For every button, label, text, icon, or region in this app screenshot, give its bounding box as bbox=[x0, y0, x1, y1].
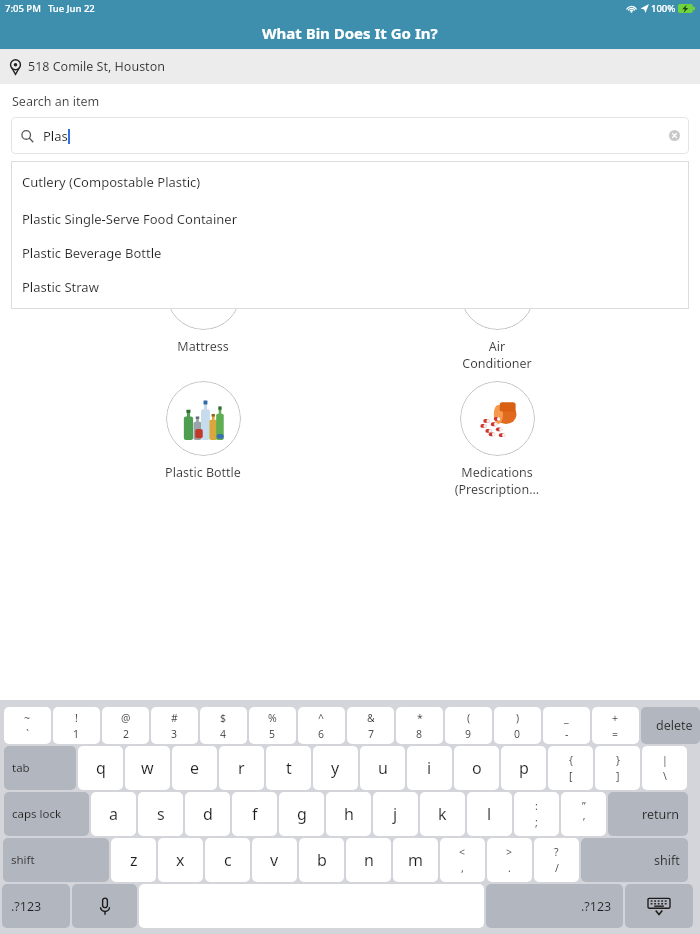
staticText: & bbox=[367, 711, 375, 725]
button[interactable]: _ bbox=[543, 707, 590, 744]
staticText: 8 bbox=[416, 727, 423, 741]
button[interactable]: | bbox=[642, 746, 687, 790]
button[interactable]: caps lock bbox=[4, 792, 89, 836]
staticText: 7 bbox=[368, 727, 375, 741]
button[interactable]: w bbox=[125, 746, 170, 790]
button[interactable]: return bbox=[608, 792, 688, 836]
button[interactable]: ? bbox=[534, 838, 579, 882]
staticText: ] bbox=[616, 769, 620, 783]
button[interactable]: Plastic Single-Serve Food Container bbox=[11, 202, 689, 236]
staticText: k bbox=[438, 803, 447, 825]
button[interactable]: t bbox=[266, 746, 311, 790]
button[interactable]: o bbox=[454, 746, 499, 790]
button[interactable]: a bbox=[91, 792, 136, 836]
button[interactable]: tab bbox=[4, 746, 76, 790]
button[interactable]: f bbox=[232, 792, 277, 836]
button[interactable]: Hide keyboard bbox=[625, 884, 693, 928]
button[interactable]: .?123 bbox=[486, 884, 623, 928]
staticText: [ bbox=[569, 769, 573, 783]
staticText: m bbox=[408, 849, 423, 871]
staticText: | bbox=[662, 753, 668, 767]
staticText: ^ bbox=[318, 711, 325, 725]
staticText: j bbox=[393, 803, 398, 825]
button[interactable]: Medications (Prescription... bbox=[407, 381, 587, 497]
staticText: * bbox=[417, 711, 423, 725]
button[interactable]: Cutlery (Compostable Plastic) bbox=[11, 161, 689, 202]
button[interactable]: l bbox=[467, 792, 512, 836]
staticText: caps lock bbox=[12, 806, 62, 822]
button[interactable]: Plastic Bottle bbox=[113, 381, 293, 481]
button[interactable]: x bbox=[158, 838, 203, 882]
staticText: . bbox=[508, 861, 511, 875]
button[interactable]: shift bbox=[3, 838, 109, 882]
staticText: ) bbox=[516, 711, 520, 725]
button[interactable]: .?123 bbox=[2, 884, 70, 928]
button[interactable]: n bbox=[346, 838, 391, 882]
button[interactable]: k bbox=[420, 792, 465, 836]
staticText: 100% bbox=[651, 2, 676, 15]
button[interactable]: $ bbox=[200, 707, 247, 744]
button[interactable]: * bbox=[396, 707, 443, 744]
staticText: g bbox=[297, 803, 307, 825]
button[interactable]: d bbox=[185, 792, 230, 836]
button[interactable]: + bbox=[592, 707, 639, 744]
button[interactable]: } bbox=[595, 746, 640, 790]
button[interactable]: s bbox=[138, 792, 183, 836]
button[interactable]: v bbox=[252, 838, 297, 882]
button[interactable]: < bbox=[440, 838, 485, 882]
button[interactable]: ! bbox=[53, 707, 100, 744]
staticText: > bbox=[506, 845, 513, 859]
button[interactable]: i bbox=[407, 746, 452, 790]
button[interactable]: Plastic Beverage Bottle bbox=[11, 236, 689, 270]
button[interactable]: Air Conditioner bbox=[407, 255, 587, 371]
staticText: 1 bbox=[73, 727, 80, 741]
button[interactable]: @ bbox=[102, 707, 149, 744]
staticText: Cutlery (Compostable Plastic) bbox=[22, 173, 201, 191]
button[interactable]: Mattress bbox=[113, 255, 293, 355]
button[interactable]: % bbox=[249, 707, 296, 744]
button[interactable]: m bbox=[393, 838, 438, 882]
button[interactable]: ~ bbox=[4, 707, 51, 744]
staticText: delete bbox=[656, 717, 693, 734]
button[interactable]: 518 Comile St, Houston bbox=[9, 58, 165, 75]
staticText: 9 bbox=[465, 727, 472, 741]
button[interactable]: y bbox=[313, 746, 358, 790]
staticText: .?123 bbox=[581, 898, 612, 915]
staticText: h bbox=[344, 803, 354, 825]
button[interactable]: e bbox=[172, 746, 217, 790]
button[interactable]: > bbox=[487, 838, 532, 882]
button[interactable]: ( bbox=[445, 707, 492, 744]
staticText: ? bbox=[554, 845, 559, 859]
button[interactable]: b bbox=[299, 838, 344, 882]
button[interactable]: z bbox=[111, 838, 156, 882]
button[interactable]: : bbox=[514, 792, 559, 836]
staticText: x bbox=[176, 849, 185, 871]
button[interactable]: u bbox=[360, 746, 405, 790]
button[interactable]: h bbox=[326, 792, 371, 836]
button[interactable]: Voice input bbox=[72, 884, 137, 928]
button[interactable]: { bbox=[548, 746, 593, 790]
button[interactable]: Plas bbox=[11, 117, 689, 154]
staticText: 518 Comile St, Houston bbox=[28, 58, 165, 75]
button[interactable]: ^ bbox=[298, 707, 345, 744]
button[interactable]: j bbox=[373, 792, 418, 836]
button[interactable]: Plastic Straw bbox=[11, 270, 689, 304]
button[interactable]: # bbox=[151, 707, 198, 744]
button[interactable]: r bbox=[219, 746, 264, 790]
button[interactable]: g bbox=[279, 792, 324, 836]
button[interactable]: delete bbox=[641, 707, 700, 744]
staticText: / bbox=[555, 861, 559, 875]
staticText: ” bbox=[582, 799, 586, 813]
button[interactable]: ” bbox=[561, 792, 606, 836]
button[interactable]: shift bbox=[581, 838, 688, 882]
staticText: ! bbox=[75, 711, 78, 725]
button[interactable]: ) bbox=[494, 707, 541, 744]
button[interactable]: & bbox=[347, 707, 394, 744]
staticText: { bbox=[569, 753, 573, 767]
staticText: _ bbox=[564, 711, 569, 725]
button[interactable]: q bbox=[78, 746, 123, 790]
button[interactable]: p bbox=[501, 746, 546, 790]
staticText: Plas bbox=[43, 127, 68, 145]
button[interactable]: c bbox=[205, 838, 250, 882]
